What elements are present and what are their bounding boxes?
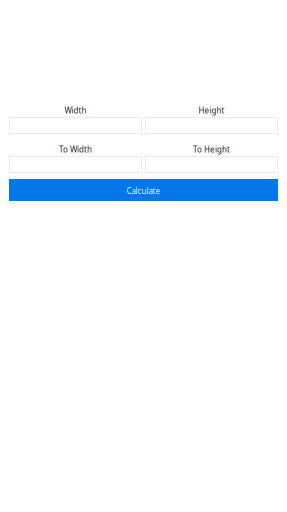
button[interactable]: To Width	[9, 156, 142, 173]
staticText: To Height	[193, 144, 230, 155]
button[interactable]: Calculate	[9, 179, 278, 201]
staticText: To Width	[59, 144, 92, 155]
button[interactable]: Width	[9, 117, 142, 134]
staticText: Height	[198, 105, 224, 116]
staticText: Width	[64, 105, 86, 116]
button[interactable]: To Height	[145, 156, 278, 173]
staticText: Calculate	[126, 186, 160, 196]
button[interactable]: Height	[145, 117, 278, 134]
